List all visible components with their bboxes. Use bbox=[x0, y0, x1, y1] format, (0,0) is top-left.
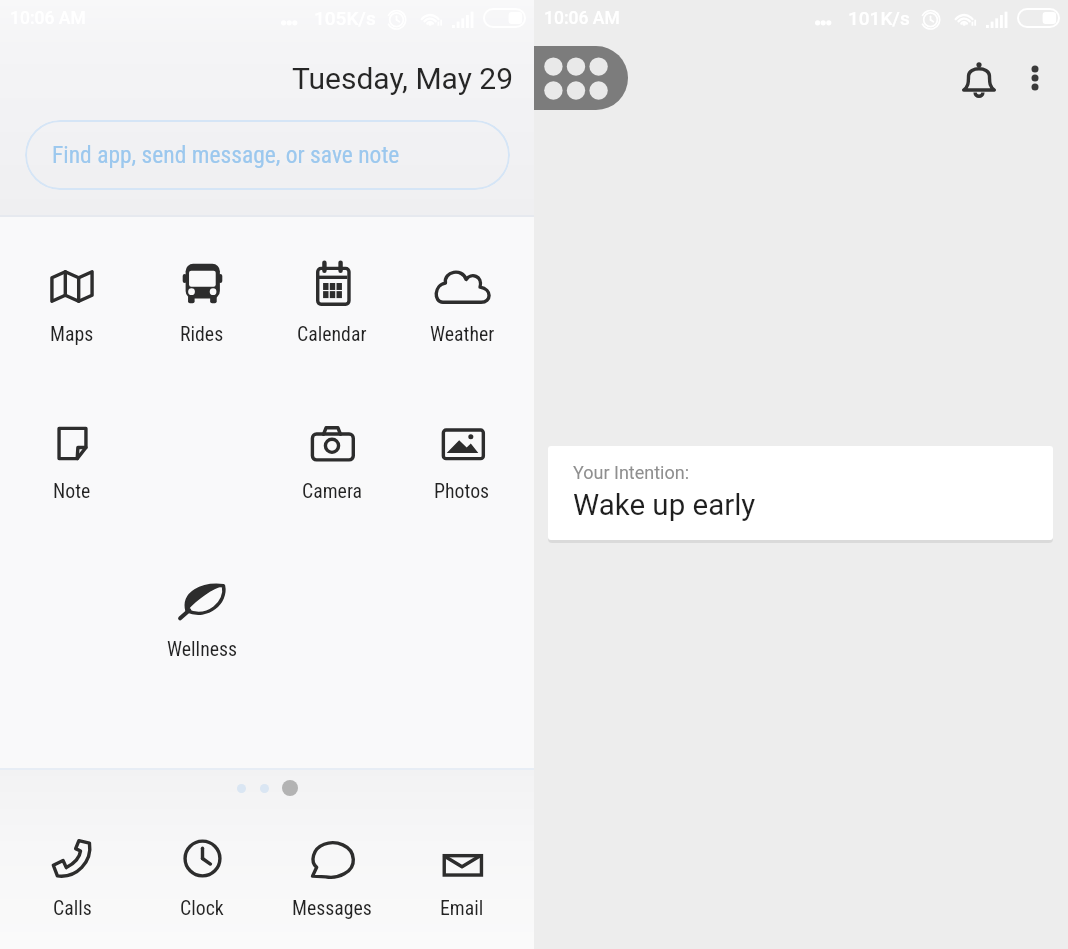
staticText: Wake up early bbox=[573, 488, 756, 523]
staticText: Email bbox=[440, 897, 484, 920]
staticText: 101K/s bbox=[848, 7, 910, 29]
button[interactable]: Note bbox=[7, 418, 137, 503]
button[interactable]: Clock bbox=[137, 836, 267, 920]
staticText: Messages bbox=[292, 897, 372, 920]
staticText: Tuesday, May 29 bbox=[292, 61, 514, 96]
staticText: Photos bbox=[434, 480, 490, 503]
staticText: Note bbox=[53, 480, 91, 503]
staticText: Maps bbox=[50, 323, 94, 346]
button[interactable]: App drawer bbox=[534, 46, 628, 110]
button[interactable]: Email bbox=[397, 836, 527, 920]
button[interactable]: Messages bbox=[267, 836, 397, 920]
staticText: Calendar bbox=[297, 323, 367, 346]
button[interactable]: Weather bbox=[397, 261, 527, 346]
button[interactable]: Wellness bbox=[137, 576, 267, 661]
staticText: 10:06 AM bbox=[10, 8, 86, 29]
staticText: Camera bbox=[302, 480, 363, 503]
staticText: Your Intention: bbox=[573, 462, 690, 483]
button[interactable]: Camera bbox=[267, 418, 397, 503]
staticText: Find app, send message, or save note bbox=[52, 141, 400, 169]
staticText: Weather bbox=[430, 323, 495, 346]
staticText: Clock bbox=[180, 897, 224, 920]
staticText: Wellness bbox=[167, 638, 238, 661]
button[interactable]: Notifications bbox=[945, 45, 1013, 113]
button[interactable]: Photos bbox=[397, 418, 527, 503]
staticText: 10:06 AM bbox=[544, 8, 620, 29]
button[interactable]: Rides bbox=[137, 261, 267, 346]
staticText: Rides bbox=[180, 323, 224, 346]
button[interactable]: Calendar bbox=[267, 261, 397, 346]
button[interactable]: Your Intention: bbox=[548, 446, 1053, 540]
staticText: 105K/s bbox=[314, 7, 376, 29]
staticText: Calls bbox=[53, 897, 92, 920]
button[interactable]: Maps bbox=[7, 261, 137, 346]
button[interactable]: Calls bbox=[7, 836, 137, 920]
button[interactable]: Find app, send message, or save note bbox=[25, 120, 510, 190]
button[interactable]: More options bbox=[1006, 49, 1064, 107]
